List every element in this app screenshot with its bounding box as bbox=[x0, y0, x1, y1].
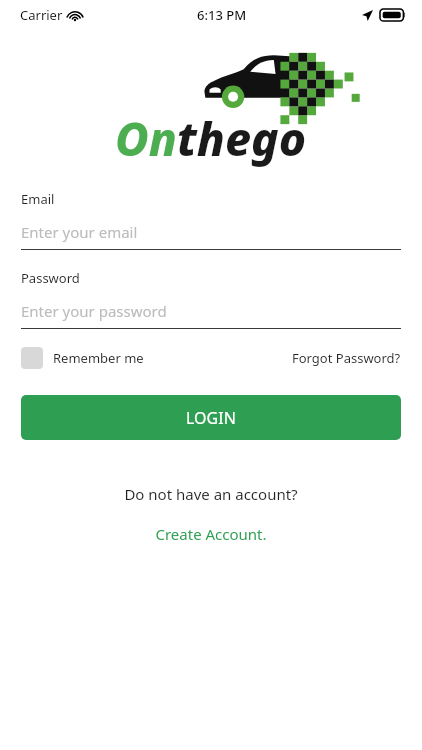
staticText: Enter your email bbox=[21, 222, 138, 242]
staticText: Enter your password bbox=[21, 301, 167, 321]
button[interactable]: Remember me bbox=[21, 347, 148, 369]
staticText: Forgot Password? bbox=[292, 349, 401, 367]
button[interactable]: Enter your email bbox=[21, 222, 401, 242]
staticText: Remember me bbox=[53, 349, 144, 367]
staticText: Do not have an account? bbox=[21, 484, 401, 504]
staticText: LOGIN bbox=[186, 407, 236, 429]
staticText: 6:13 PM bbox=[197, 6, 247, 24]
staticText: thego bbox=[177, 107, 307, 170]
button[interactable]: LOGIN bbox=[21, 395, 401, 440]
staticText: Email bbox=[21, 190, 55, 208]
staticText: Carrier bbox=[20, 6, 63, 24]
button[interactable]: Create Account. bbox=[21, 524, 401, 544]
staticText: Create Account. bbox=[155, 524, 267, 544]
staticText: On bbox=[115, 107, 177, 170]
button[interactable]: Forgot Password? bbox=[292, 349, 401, 367]
staticText: Password bbox=[21, 269, 80, 287]
button[interactable]: Enter your password bbox=[21, 301, 401, 321]
